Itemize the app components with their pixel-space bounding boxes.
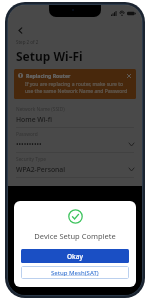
staticText: Home Wi-fi: [16, 115, 53, 124]
button[interactable]: Back: [13, 23, 27, 37]
staticText: Setup Mesh(SAT): [51, 269, 99, 277]
staticText: WPA2-Personal: [16, 165, 66, 174]
button[interactable]: Security Type: [8, 153, 142, 178]
staticText: ••••••••••: [16, 140, 42, 149]
button[interactable]: Network Name (SSID): [8, 103, 142, 128]
button[interactable]: Okay: [21, 249, 129, 263]
button[interactable]: Password: [8, 128, 142, 153]
staticText: Replacing Router: [26, 72, 71, 79]
staticText: Setup Wi-Fi: [16, 48, 83, 64]
button[interactable]: Setup Mesh(SAT): [21, 266, 129, 279]
staticText: Okay: [67, 252, 83, 261]
staticText: Device Setup Complete: [34, 231, 116, 241]
staticText: Step 2 of 2: [16, 39, 39, 45]
button[interactable]: Dismiss: [126, 73, 132, 79]
staticText: If you are replacing a router, make sure…: [25, 81, 132, 95]
staticText: Security Type: [16, 156, 46, 163]
staticText: Password: [16, 131, 38, 138]
staticText: Network Name (SSID): [16, 106, 65, 113]
